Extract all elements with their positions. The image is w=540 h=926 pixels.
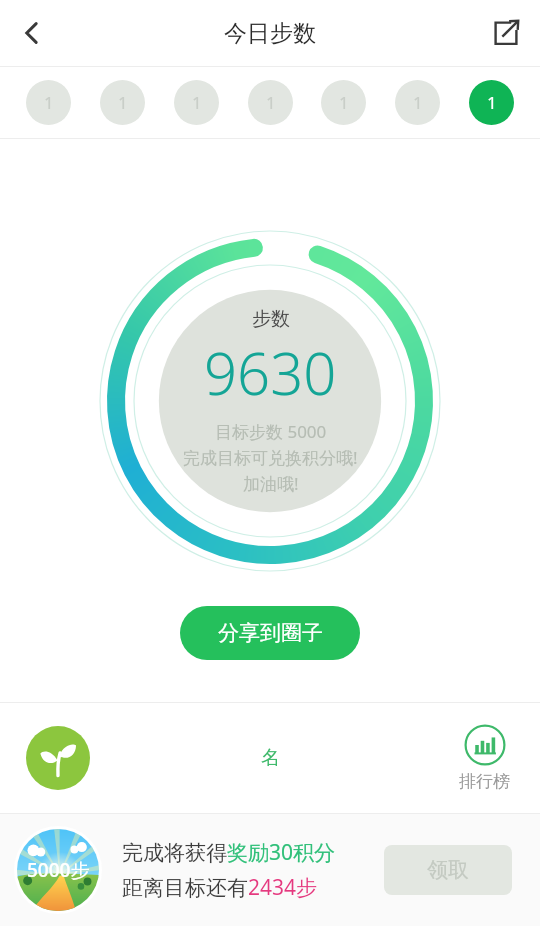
staticText: 距离目标还有2434步: [122, 873, 318, 902]
staticText: 9630: [204, 333, 337, 412]
button[interactable]: 1: [174, 80, 219, 125]
staticText: 目标步数 5000: [215, 420, 327, 443]
staticText: 1: [44, 91, 54, 114]
button[interactable]: 1: [321, 80, 366, 125]
staticText: 1: [339, 91, 349, 114]
staticText: 今日步数: [224, 19, 316, 48]
button[interactable]: 1: [26, 80, 71, 125]
staticText: 1: [266, 91, 276, 114]
staticText: 领取: [427, 857, 469, 883]
button[interactable]: Sprout: [26, 726, 90, 790]
button[interactable]: 1: [395, 80, 440, 125]
button[interactable]: 领取: [384, 845, 512, 895]
staticText: 步数: [252, 307, 290, 331]
staticText: 加油哦!: [243, 472, 299, 495]
button[interactable]: 1: [100, 80, 145, 125]
staticText: 5000步: [27, 857, 90, 883]
staticText: 排行榜: [459, 771, 510, 792]
button[interactable]: 排行榜: [459, 724, 510, 792]
staticText: 完成目标可兑换积分哦!: [183, 446, 358, 469]
staticText: 1: [487, 91, 497, 114]
staticText: 1: [192, 91, 202, 114]
button[interactable]: 分享到圈子: [180, 606, 360, 660]
staticText: 完成将获得奖励30积分: [122, 838, 336, 867]
staticText: 名: [261, 746, 280, 770]
button[interactable]: Share: [480, 7, 532, 59]
staticText: 1: [413, 91, 423, 114]
button[interactable]: 1: [469, 80, 514, 125]
button[interactable]: 1: [248, 80, 293, 125]
staticText: 分享到圈子: [218, 620, 323, 646]
button[interactable]: Back: [6, 7, 58, 59]
staticText: 1: [118, 91, 128, 114]
button[interactable]: 5000 step goal badge: [14, 826, 102, 914]
